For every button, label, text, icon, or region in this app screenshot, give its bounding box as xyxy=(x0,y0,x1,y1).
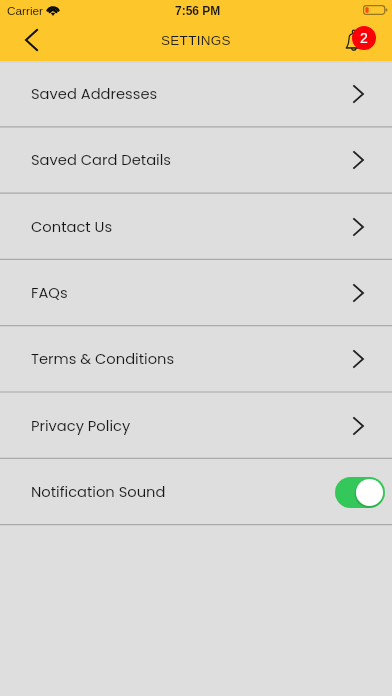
button[interactable]: Contact Us xyxy=(0,194,392,260)
staticText: Saved Addresses xyxy=(31,84,158,105)
staticText: Notification Sound xyxy=(31,482,166,503)
button[interactable]: Notification Sound xyxy=(0,459,392,525)
staticText: Saved Card Details xyxy=(31,150,172,171)
button[interactable]: Privacy Policy xyxy=(0,393,392,459)
staticText: Terms & Conditions xyxy=(31,349,175,370)
staticText: SETTINGS xyxy=(161,33,231,48)
staticText: 7:56 PM xyxy=(175,4,221,17)
button[interactable]: Back xyxy=(0,22,52,61)
staticText: FAQs xyxy=(31,283,68,304)
button[interactable]: Notifications xyxy=(340,22,392,61)
button[interactable]: Notification Sound toggle xyxy=(335,477,385,508)
staticText: Carrier xyxy=(7,4,44,17)
staticText: Contact Us xyxy=(31,217,113,238)
staticText: Privacy Policy xyxy=(31,416,131,437)
button[interactable]: Terms & Conditions xyxy=(0,326,392,392)
button[interactable]: Saved Card Details xyxy=(0,127,392,193)
button[interactable]: Saved Addresses xyxy=(0,61,392,127)
button[interactable]: FAQs xyxy=(0,260,392,326)
staticText: 2 xyxy=(360,30,368,46)
